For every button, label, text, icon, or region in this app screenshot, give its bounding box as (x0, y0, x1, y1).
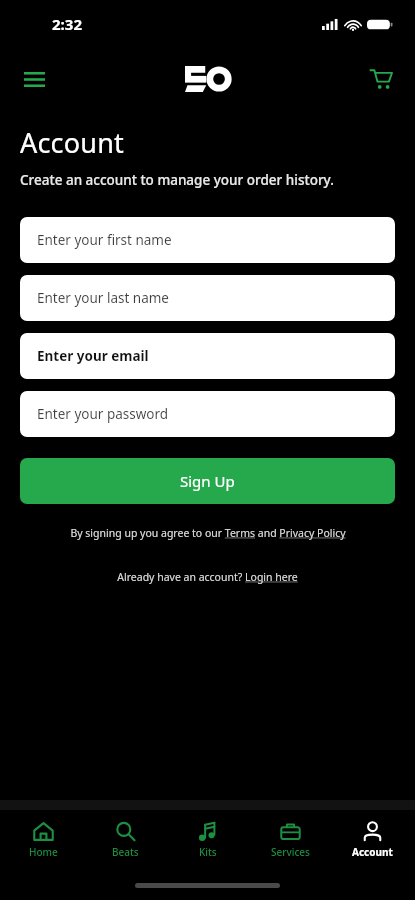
button[interactable]: Enter your first name (20, 217, 395, 263)
button[interactable]: Sign Up (20, 458, 395, 504)
staticText: Enter your email (37, 347, 149, 365)
staticText: Enter your password (37, 405, 169, 423)
staticText: Sign Up (180, 471, 235, 491)
button[interactable]: Enter your email (20, 333, 395, 379)
button[interactable]: Logo (185, 66, 231, 92)
staticText: Beats (112, 845, 139, 859)
button[interactable]: Enter your last name (20, 275, 395, 321)
button[interactable]: Kits (169, 817, 247, 863)
staticText: 2:32 (52, 14, 82, 34)
staticText: Kits (199, 845, 217, 859)
staticText: Enter your last name (37, 289, 169, 307)
button[interactable]: Account (333, 817, 411, 863)
staticText: Services (271, 845, 310, 859)
button[interactable]: Home (4, 817, 82, 863)
button[interactable]: Beats (86, 817, 164, 863)
staticText: Create an account to manage your order h… (20, 171, 334, 189)
button[interactable]: Already have an account? Login here (0, 570, 415, 584)
button[interactable]: Cart (361, 59, 401, 99)
staticText: Account (20, 124, 125, 161)
staticText: Account (352, 845, 393, 859)
staticText: By signing up you agree to our Terms and… (70, 526, 346, 540)
button[interactable]: Services (251, 817, 329, 863)
staticText: Already have an account? Login here (117, 570, 298, 584)
button[interactable]: Menu (14, 59, 54, 99)
staticText: Enter your first name (37, 231, 172, 249)
staticText: Home (29, 845, 58, 859)
button[interactable]: Enter your password (20, 391, 395, 437)
button[interactable]: By signing up you agree to our Terms and… (0, 526, 415, 540)
